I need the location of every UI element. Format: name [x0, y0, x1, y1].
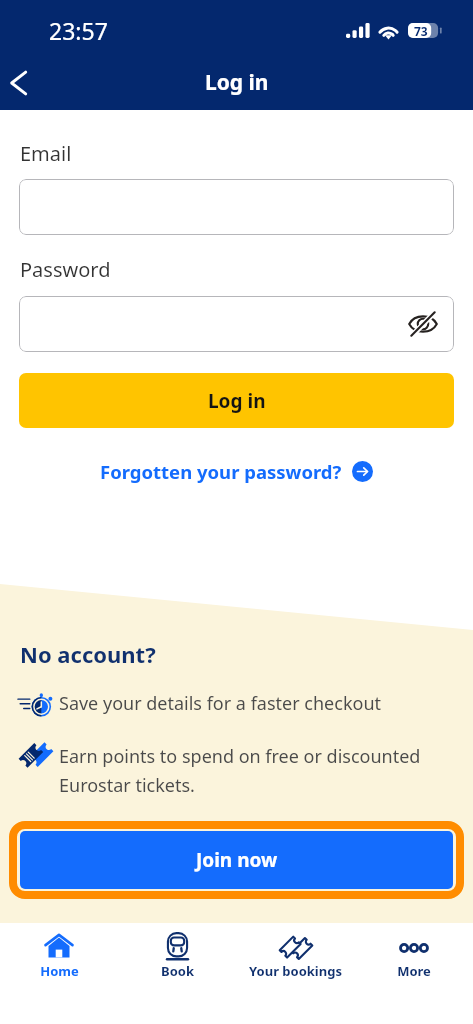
- staticText: No account?: [20, 639, 156, 669]
- button[interactable]: More: [354, 923, 473, 980]
- staticText: Book: [161, 962, 194, 980]
- staticText: 73: [414, 23, 428, 38]
- button[interactable]: Show password: [403, 304, 443, 344]
- staticText: Password: [20, 256, 111, 283]
- staticText: Forgotten your password?: [100, 459, 342, 484]
- button[interactable]: Log in: [19, 373, 454, 428]
- button[interactable]: Show password: [19, 296, 454, 352]
- staticText: Log in: [208, 388, 266, 414]
- staticText: Join now: [196, 847, 278, 873]
- button[interactable]: Back: [0, 60, 46, 106]
- staticText: More: [397, 962, 431, 980]
- button[interactable]: [19, 179, 454, 235]
- staticText: Save your details for a faster checkout: [59, 691, 381, 716]
- button[interactable]: Your bookings: [236, 923, 354, 980]
- staticText: 23:57: [49, 15, 108, 46]
- button[interactable]: Book: [118, 923, 236, 980]
- staticText: Log in: [205, 68, 269, 97]
- staticText: Your bookings: [249, 962, 342, 980]
- button[interactable]: Home: [0, 923, 118, 980]
- staticText: Email: [20, 140, 72, 167]
- button[interactable]: Forgotten your password?: [92, 455, 381, 488]
- staticText: Home: [40, 962, 79, 980]
- button[interactable]: Join now: [9, 821, 464, 899]
- staticText: Earn points to spend on free or discount…: [59, 744, 453, 797]
